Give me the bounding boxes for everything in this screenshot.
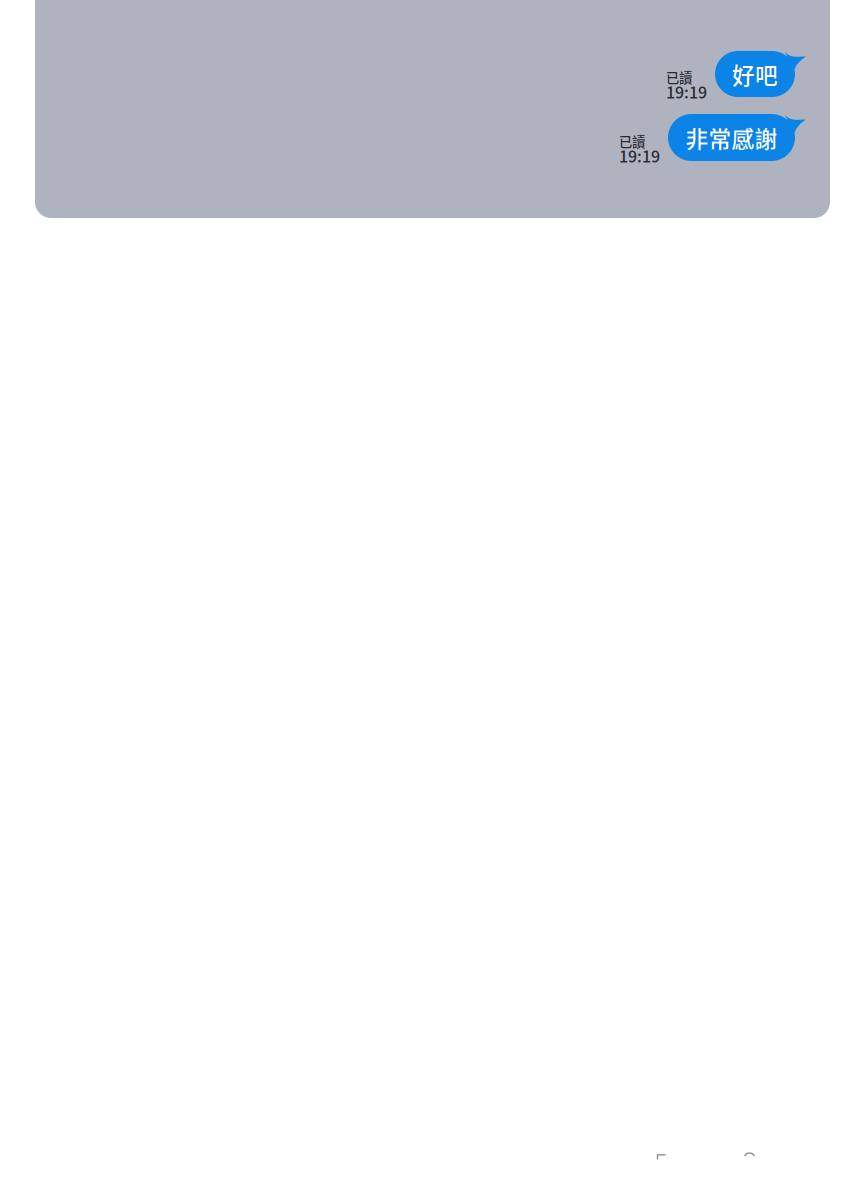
staticText: 好吧 — [732, 58, 778, 90]
button[interactable]: 已讀 — [51, 114, 809, 161]
staticText: 已讀 — [666, 67, 692, 87]
staticText: 19:19 — [666, 80, 707, 103]
staticText: 已讀 — [619, 131, 645, 151]
staticText: 19:19 — [619, 144, 660, 167]
staticText: 非常感謝 — [685, 121, 777, 154]
button[interactable]: 已讀 — [51, 51, 809, 97]
